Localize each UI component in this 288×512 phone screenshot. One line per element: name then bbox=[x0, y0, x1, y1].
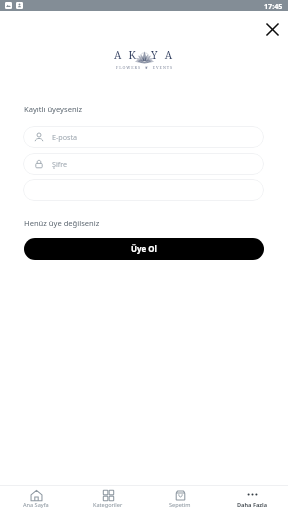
staticText: Y A bbox=[151, 48, 175, 62]
staticText: FLOWERS ❦ EVENTS bbox=[116, 65, 174, 70]
button[interactable]: Üye Ol bbox=[24, 238, 264, 260]
button[interactable]: Ana Sayfa bbox=[0, 486, 72, 512]
button[interactable]: Sepetim bbox=[144, 486, 216, 512]
staticText: A K bbox=[114, 48, 139, 62]
staticText: Daha Fazla bbox=[237, 501, 268, 509]
button[interactable]: Close bbox=[258, 15, 286, 43]
button[interactable]: Daha Fazla bbox=[216, 486, 288, 512]
button[interactable]: Şifre bbox=[23, 153, 264, 175]
staticText: Üye Ol bbox=[131, 244, 157, 255]
button[interactable]: E-posta bbox=[23, 126, 264, 148]
staticText: Şifre bbox=[52, 159, 68, 169]
staticText: E-posta bbox=[52, 132, 78, 142]
staticText: Kayıtlı üyeyseniz bbox=[24, 104, 83, 114]
staticText: Henüz üye değilseniz bbox=[24, 218, 100, 228]
staticText: Kategoriler bbox=[93, 501, 123, 509]
button[interactable]: Kategoriler bbox=[72, 486, 144, 512]
staticText: Sepetim bbox=[169, 501, 191, 509]
staticText: 17:45 bbox=[264, 1, 283, 11]
button[interactable] bbox=[23, 179, 264, 201]
staticText: Ana Sayfa bbox=[23, 501, 49, 509]
